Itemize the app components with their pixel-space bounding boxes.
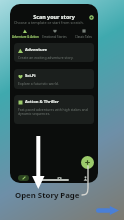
button[interactable]: Profile <box>86 12 96 22</box>
staticText: Fast-paced adventures with high stakes a… <box>18 107 88 116</box>
staticText: Open Story Page <box>15 190 80 201</box>
staticText: Classic Tales <box>75 35 92 39</box>
button[interactable]: Adventure <box>14 43 94 62</box>
button[interactable]: Sci-Fi <box>14 69 94 89</box>
staticText: Adventure <box>25 47 47 53</box>
button[interactable]: Classic Tales <box>69 26 98 40</box>
button[interactable]: Camera <box>54 175 65 181</box>
button[interactable]: Create story <box>81 156 94 169</box>
staticText: Explore a futuristic world. <box>18 81 59 86</box>
staticText: Sci-Fi <box>25 73 36 79</box>
button[interactable]: Adventure & Action <box>10 26 40 40</box>
staticText: Action & Thriller <box>25 99 59 105</box>
staticText: Emotional Stories <box>42 35 67 39</box>
staticText: Choose a template or start from scratch. <box>14 20 84 25</box>
button[interactable]: Home <box>18 175 29 181</box>
staticText: Create an exciting adventure story. <box>18 55 74 60</box>
staticText: Adventure & Action <box>12 35 39 39</box>
button[interactable]: Action & Thriller <box>14 95 94 124</box>
button[interactable]: Profile <box>80 175 91 181</box>
staticText: Scan your story <box>10 13 98 20</box>
button[interactable]: Emotional Stories <box>40 26 69 40</box>
